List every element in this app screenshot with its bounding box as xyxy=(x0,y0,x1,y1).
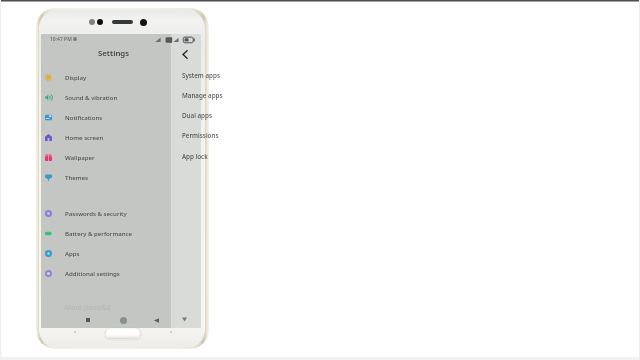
button[interactable]: Permissions xyxy=(41,125,201,145)
button[interactable]: Display xyxy=(41,67,171,87)
button[interactable]: Themes xyxy=(41,167,171,187)
staticText: Sound & vibration xyxy=(65,93,118,101)
staticText: Wallpaper xyxy=(65,153,95,161)
button[interactable]: Manage apps xyxy=(41,85,201,105)
button[interactable]: Apps xyxy=(41,243,171,263)
staticText: App lock xyxy=(182,152,208,161)
button[interactable]: Wallpaper xyxy=(41,147,171,167)
staticText: Apps xyxy=(65,249,80,257)
staticText: Themes xyxy=(65,173,88,181)
button[interactable]: Back xyxy=(178,48,191,61)
staticText: Battery & performance xyxy=(65,229,132,237)
staticText: Notifications xyxy=(65,113,103,121)
staticText: Permissions xyxy=(182,131,219,140)
staticText: Dual apps xyxy=(182,111,212,120)
button[interactable]: Sound & vibration xyxy=(41,87,171,107)
button[interactable]: Home screen xyxy=(41,127,171,147)
button[interactable]: Dual apps xyxy=(41,105,201,125)
button[interactable]: Notifications xyxy=(41,107,171,127)
staticText: 10:47 PM xyxy=(50,36,72,43)
button[interactable]: Passwords & security xyxy=(41,203,171,223)
button[interactable]: App lock xyxy=(41,146,201,166)
button[interactable]: Additional settings xyxy=(41,263,171,283)
button[interactable]: Back xyxy=(178,313,191,326)
staticText: About phone&d xyxy=(64,303,111,311)
staticText: Passwords & security xyxy=(65,209,127,217)
button[interactable]: Home xyxy=(116,313,130,327)
staticText: Manage apps xyxy=(182,91,223,100)
staticText: System apps xyxy=(182,71,220,80)
button[interactable]: Home xyxy=(106,328,139,339)
button[interactable]: Back xyxy=(149,313,163,327)
staticText: Settings xyxy=(98,48,130,59)
staticText: Additional settings xyxy=(65,269,120,277)
button[interactable]: Battery & performance xyxy=(41,223,171,243)
button[interactable]: Recents xyxy=(81,313,95,327)
staticText: Display xyxy=(65,73,87,81)
button[interactable]: System apps xyxy=(41,65,201,85)
staticText: Home screen xyxy=(65,133,104,141)
